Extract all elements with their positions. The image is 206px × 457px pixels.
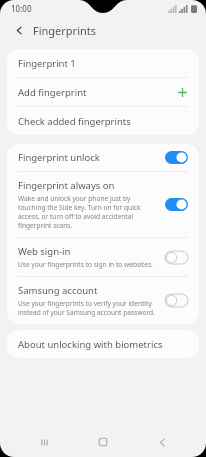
button[interactable]: Recents xyxy=(29,427,59,457)
staticText: Use your fingerprints to verify your ide… xyxy=(18,299,159,317)
button[interactable]: Home xyxy=(88,427,118,457)
staticText: Web sign-in xyxy=(18,245,71,258)
button[interactable]: Back xyxy=(147,427,177,457)
staticText: Samsung account xyxy=(18,284,98,297)
button[interactable]: Check added fingerprints xyxy=(7,107,199,135)
button[interactable]: Add fingerprint xyxy=(7,78,199,106)
staticText: Add fingerprint xyxy=(18,86,87,99)
staticText: Fingerprint 1 xyxy=(18,57,76,70)
staticText: Fingerprints xyxy=(33,23,97,38)
button[interactable]: Samsung account xyxy=(7,277,199,324)
button[interactable]: Back xyxy=(9,20,29,40)
button[interactable]: Fingerprint 1 xyxy=(7,49,199,77)
button[interactable]: Fingerprint unlock xyxy=(7,144,199,171)
button[interactable]: About unlocking with biometrics xyxy=(7,330,199,358)
staticText: Fingerprint unlock xyxy=(18,151,100,164)
staticText: Fingerprint always on xyxy=(18,179,115,192)
staticText: 10:00 xyxy=(11,3,32,14)
button[interactable]: Fingerprint always on xyxy=(7,172,199,237)
staticText: About unlocking with biometrics xyxy=(18,338,163,351)
button[interactable]: Web sign-in xyxy=(7,238,199,276)
staticText: Check added fingerprints xyxy=(18,115,131,128)
staticText: Use your fingerprints to sign in to webs… xyxy=(18,260,153,269)
staticText: Wake and unlock your phone just by touch… xyxy=(18,194,159,230)
